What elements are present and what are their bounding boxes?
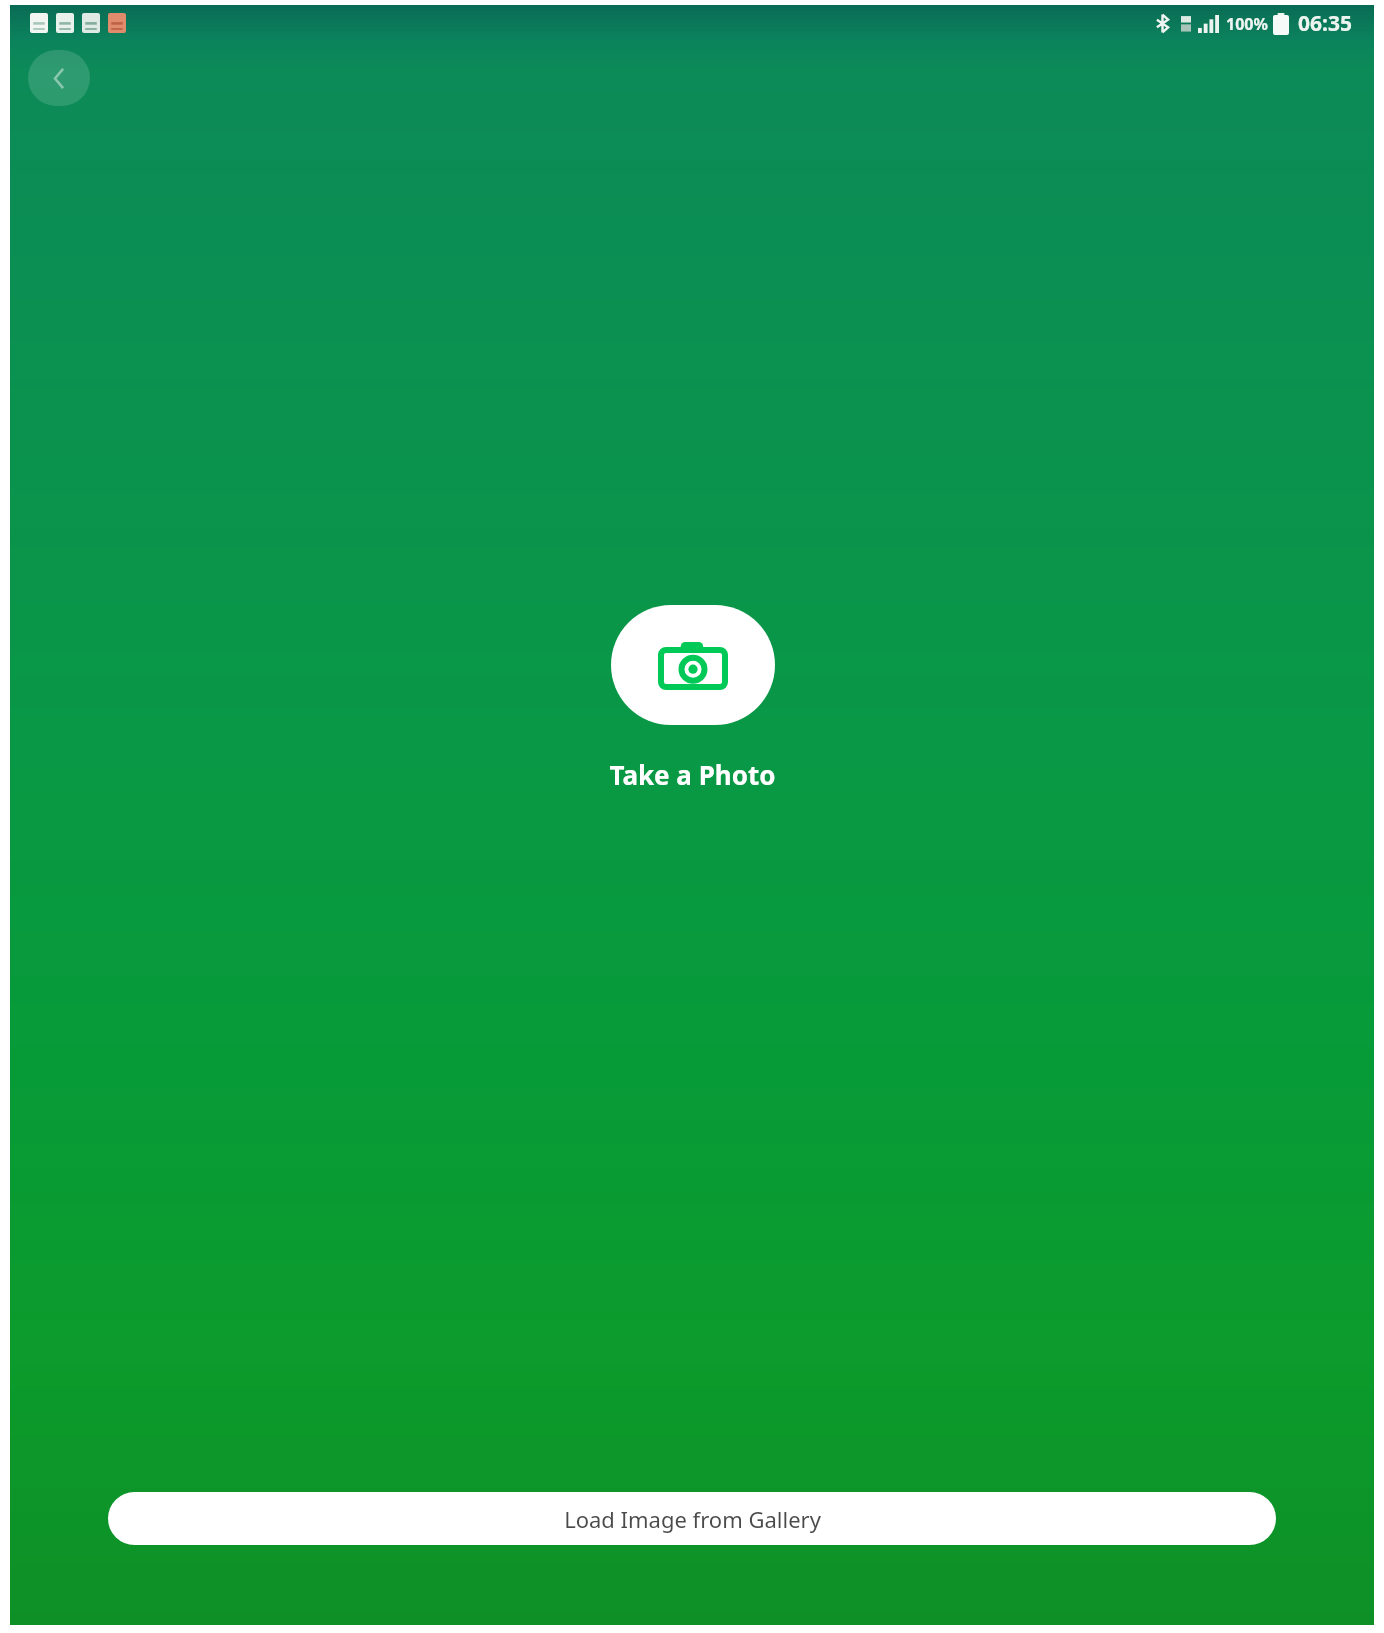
staticText: 100% [1226, 13, 1268, 35]
staticText: Load Image from Gallery [564, 1504, 821, 1534]
button[interactable]: Take a Photo [611, 605, 775, 725]
button[interactable]: Back [28, 50, 90, 106]
staticText: 06:35 [1298, 9, 1352, 38]
staticText: Take a Photo [609, 757, 776, 792]
button[interactable]: Load Image from Gallery [108, 1492, 1276, 1545]
